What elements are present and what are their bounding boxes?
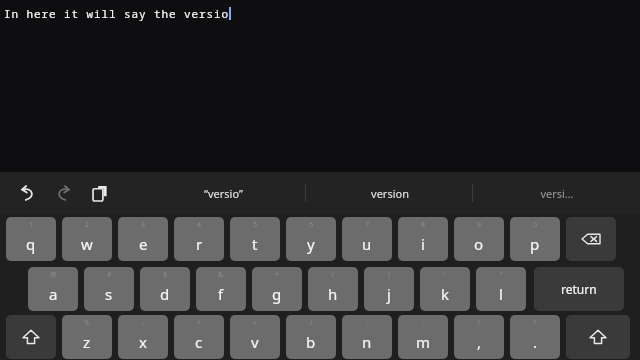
staticText: "	[500, 270, 503, 280]
staticText: ‘	[444, 270, 446, 280]
staticText: -	[142, 318, 145, 328]
staticText: t	[252, 234, 258, 254]
staticText: ;	[366, 318, 368, 328]
staticText: y	[307, 234, 315, 254]
button[interactable]: Shift	[6, 315, 56, 359]
staticText: m	[416, 332, 431, 352]
staticText: j	[387, 284, 391, 304]
staticText: b	[306, 332, 316, 352]
staticText: k	[441, 284, 450, 304]
button[interactable]: $	[140, 267, 190, 311]
button[interactable]: *	[252, 267, 302, 311]
staticText: h	[328, 284, 338, 304]
button[interactable]: 2	[62, 217, 112, 261]
staticText: i	[421, 234, 425, 254]
staticText: *	[275, 270, 279, 280]
staticText: $	[163, 270, 168, 280]
button[interactable]: Paste	[84, 178, 114, 208]
staticText: 0	[533, 220, 538, 230]
staticText: a	[49, 284, 58, 304]
staticText: )	[388, 270, 391, 280]
button[interactable]: version	[306, 172, 473, 214]
staticText: versi…	[540, 186, 574, 201]
button[interactable]: ;	[342, 315, 392, 359]
button[interactable]: 7	[342, 217, 392, 261]
button[interactable]: @	[28, 267, 78, 311]
staticText: 3	[141, 220, 146, 230]
button[interactable]: )	[364, 267, 414, 311]
staticText: &	[218, 270, 224, 280]
staticText: l	[499, 284, 503, 304]
staticText: f	[218, 284, 224, 304]
button[interactable]: :	[398, 315, 448, 359]
button[interactable]: 9	[454, 217, 504, 261]
button[interactable]: ?	[510, 315, 560, 359]
staticText: d	[160, 284, 170, 304]
button[interactable]: 0	[510, 217, 560, 261]
staticText: x	[139, 332, 147, 352]
staticText: +	[197, 318, 202, 328]
button[interactable]: 3	[118, 217, 168, 261]
staticText: “versio”	[204, 186, 243, 201]
staticText: z	[83, 332, 91, 352]
staticText: return	[561, 281, 597, 297]
staticText: 2	[85, 220, 90, 230]
staticText: w	[81, 234, 93, 254]
staticText: #	[107, 270, 112, 280]
staticText: e	[139, 234, 148, 254]
button[interactable]: &	[196, 267, 246, 311]
button[interactable]: 6	[286, 217, 336, 261]
button[interactable]: 8	[398, 217, 448, 261]
button[interactable]: “versio”	[140, 172, 306, 214]
staticText: v	[251, 332, 259, 352]
button[interactable]: return	[534, 267, 624, 311]
staticText: n	[362, 332, 372, 352]
staticText: 9	[477, 220, 482, 230]
staticText: 6	[309, 220, 314, 230]
staticText: p	[530, 234, 540, 254]
button[interactable]: 1	[6, 217, 56, 261]
staticText: 1	[29, 220, 34, 230]
button[interactable]: Undo	[12, 178, 42, 208]
staticText: r	[196, 234, 203, 254]
button[interactable]: (	[308, 267, 358, 311]
staticText: o	[474, 234, 484, 254]
staticText: ?	[533, 318, 537, 328]
staticText: /	[310, 318, 313, 328]
button[interactable]: "	[476, 267, 526, 311]
staticText: s	[105, 284, 113, 304]
staticText: .	[533, 332, 538, 352]
button[interactable]: !	[454, 315, 504, 359]
staticText: ,	[477, 332, 482, 352]
staticText: 4	[197, 220, 202, 230]
button[interactable]: Shift	[566, 315, 630, 359]
button[interactable]: -	[118, 315, 168, 359]
staticText: !	[478, 318, 480, 328]
button[interactable]: =	[230, 315, 280, 359]
staticText: 5	[253, 220, 258, 230]
staticText: c	[195, 332, 203, 352]
button[interactable]: #	[84, 267, 134, 311]
button[interactable]: versi…	[473, 172, 640, 214]
staticText: g	[272, 284, 282, 304]
button[interactable]: +	[174, 315, 224, 359]
staticText: version	[371, 186, 409, 201]
staticText: q	[26, 234, 36, 254]
button[interactable]: Redo	[48, 178, 78, 208]
button[interactable]: /	[286, 315, 336, 359]
staticText: :	[422, 318, 424, 328]
staticText: 8	[421, 220, 426, 230]
button[interactable]: 5	[230, 217, 280, 261]
button[interactable]: %	[62, 315, 112, 359]
staticText: 7	[365, 220, 370, 230]
button[interactable]: ‘	[420, 267, 470, 311]
button[interactable]: Backspace	[566, 217, 616, 261]
staticText: In here it will say the versio	[4, 6, 229, 21]
staticText: =	[253, 318, 258, 328]
button[interactable]: 4	[174, 217, 224, 261]
staticText: (	[332, 270, 335, 280]
staticText: @	[50, 270, 57, 280]
staticText: %	[84, 318, 90, 328]
staticText: u	[362, 234, 372, 254]
